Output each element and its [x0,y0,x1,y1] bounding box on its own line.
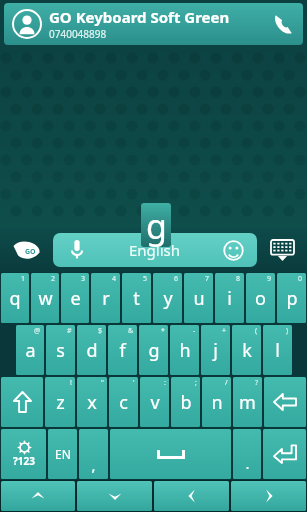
staticText: e [70,286,81,311]
button[interactable]: Left [154,481,229,511]
staticText: c [119,390,128,415]
staticText: $ [98,326,103,336]
staticText: v [150,390,160,415]
button[interactable]: Call [271,11,297,37]
staticText: g [146,203,167,247]
staticText: h [179,338,191,363]
button[interactable]: ' [109,377,138,427]
button[interactable]: , [79,429,108,479]
staticText: r [102,286,110,311]
staticText: t [133,286,140,311]
staticText: ? [255,378,259,388]
button[interactable]: * [139,325,168,375]
button[interactable]: 2 [31,273,59,323]
button[interactable]: ? [233,377,262,427]
staticText: English [129,240,181,260]
staticText: y [163,286,173,311]
staticText: g [148,338,160,363]
button[interactable]: ! [45,377,75,427]
button[interactable]: 0 [277,273,306,323]
staticText: d [86,338,98,363]
button[interactable]: Emoji [209,228,257,272]
staticText: p [286,286,298,311]
staticText: a [25,338,36,363]
button[interactable]: Symbols [1,429,46,479]
staticText: 6 [174,274,179,284]
staticText: o [255,286,266,311]
staticText: 9 [267,274,272,284]
button[interactable]: 4 [91,273,120,323]
button[interactable]: " [77,377,107,427]
button[interactable]: Up [1,481,75,511]
button[interactable]: 5 [122,273,151,323]
staticText: z [56,390,65,415]
staticText: 4 [112,274,117,284]
button[interactable]: GO Keyboard menu [0,228,53,272]
button[interactable]: Enter [263,429,306,479]
staticText: ! [70,378,72,388]
staticText: q [9,286,21,311]
staticText: s [56,338,65,363]
staticText: " [101,378,104,388]
button[interactable]: English [101,228,209,272]
button[interactable]: GO Keyboard Soft Green [4,3,303,45]
button[interactable]: ; [171,377,200,427]
button[interactable]: $ [77,325,106,375]
button[interactable]: Space [110,429,231,479]
button[interactable]: Down [77,481,152,511]
staticText: ; [195,378,197,388]
staticText: l [275,338,280,363]
button[interactable]: ( [232,325,261,375]
button[interactable]: 1 [1,273,29,323]
button[interactable]: Hide keyboard [257,228,307,272]
staticText: w [38,286,53,311]
staticText: ?123 [13,454,35,468]
staticText: x [87,390,97,415]
staticText: . [245,453,250,473]
button[interactable]: Language [48,429,77,479]
button[interactable]: 7 [184,273,213,323]
staticText: u [193,286,205,311]
staticText: 0740048898 [49,27,107,41]
staticText: 2 [51,274,56,284]
staticText: , [91,455,96,475]
button[interactable]: Backspace [264,377,306,427]
button[interactable]: 3 [61,273,89,323]
button[interactable]: . [233,429,261,479]
button[interactable]: - [170,325,199,375]
staticText: n [211,390,223,415]
button[interactable]: Right [231,481,306,511]
staticText: j [213,338,218,363]
staticText: EN [55,446,71,462]
button[interactable]: / [202,377,231,427]
staticText: - [193,326,196,336]
staticText: GO Keyboard Soft Green [49,7,230,27]
staticText: 5 [143,274,148,284]
staticText: 3 [81,274,86,284]
staticText: m [239,390,256,415]
button[interactable]: Shift [1,377,43,427]
button[interactable]: ) [263,325,292,375]
button[interactable]: Voice input [53,228,101,272]
staticText: f [119,338,126,363]
button[interactable]: 8 [215,273,244,323]
staticText: i [227,286,232,311]
button[interactable]: @ [16,325,44,375]
staticText: * [161,326,165,336]
staticText: 1 [21,274,26,284]
button[interactable]: + [201,325,230,375]
staticText: # [67,326,72,336]
button[interactable]: 9 [246,273,275,323]
staticText: 7 [205,274,210,284]
staticText: ' [133,378,135,388]
staticText: / [225,378,228,388]
button[interactable]: 6 [153,273,182,323]
button[interactable]: & [108,325,137,375]
staticText: GO [25,247,36,257]
staticText: 0 [298,274,303,284]
staticText: ( [255,326,258,336]
button[interactable]: : [140,377,169,427]
staticText: b [180,390,192,415]
staticText: & [128,326,134,336]
button[interactable]: # [46,325,75,375]
